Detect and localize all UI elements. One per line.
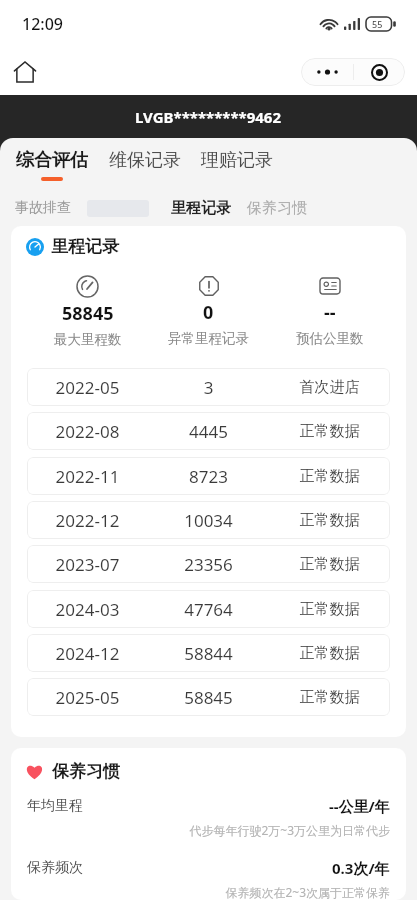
staticText: 年均里程 <box>27 797 83 815</box>
staticText: 维保记录 <box>109 149 181 172</box>
staticText: 2022-05 <box>27 376 148 399</box>
button[interactable]: 2022-05 <box>27 368 390 406</box>
button[interactable]: 2022-08 <box>27 412 390 450</box>
staticText: 58845 <box>148 686 269 709</box>
staticText: 2022-11 <box>27 465 148 488</box>
staticText: -- <box>324 300 336 325</box>
staticText: 异常里程记录 <box>168 330 249 347</box>
button[interactable]: Home <box>8 55 42 89</box>
button[interactable]: 2024-03 <box>27 590 390 628</box>
staticText: 保养习惯 <box>52 761 120 782</box>
staticText: 2022-12 <box>27 509 148 532</box>
button[interactable]: Close <box>354 58 405 86</box>
staticText: 保养频次 <box>27 859 83 877</box>
button[interactable]: 事故排查 <box>15 199 71 217</box>
staticText: 代步每年行驶2万~3万公里为日常代步 <box>27 822 390 838</box>
staticText: 正常数据 <box>269 644 390 663</box>
staticText: 事故排查 <box>15 199 71 217</box>
button[interactable]: 2024-12 <box>27 634 390 672</box>
button[interactable]: 维保记录 <box>109 138 181 181</box>
staticText: 预估公里数 <box>296 330 364 347</box>
staticText: 58845 <box>62 301 114 326</box>
staticText: 4445 <box>148 420 269 443</box>
staticText: 2024-03 <box>27 598 148 621</box>
button[interactable]: 2023-07 <box>27 545 390 583</box>
staticText: 正常数据 <box>269 422 390 441</box>
staticText: 正常数据 <box>269 555 390 574</box>
staticText: 2024-12 <box>27 642 148 665</box>
button[interactable]: 里程记录 <box>171 199 231 218</box>
staticText: 首次进店 <box>269 378 390 397</box>
staticText: 正常数据 <box>269 688 390 707</box>
staticText: 23356 <box>148 553 269 576</box>
staticText: 8723 <box>148 465 269 488</box>
staticText: 2025-05 <box>27 686 148 709</box>
button[interactable]: 综合评估 <box>16 138 88 181</box>
staticText: 最大里程数 <box>54 331 122 348</box>
staticText: 3 <box>148 376 269 399</box>
staticText: 58844 <box>148 642 269 665</box>
staticText: 理赔记录 <box>201 149 273 172</box>
staticText: 0.3次/年 <box>332 858 390 878</box>
staticText: 47764 <box>148 598 269 621</box>
staticText: 正常数据 <box>269 511 390 530</box>
staticText: 保养频次在2~3次属于正常保养 <box>27 884 390 900</box>
staticText: 55 <box>372 18 383 30</box>
staticText: 正常数据 <box>269 467 390 486</box>
staticText: 正常数据 <box>269 600 390 619</box>
staticText: 综合评估 <box>16 149 88 172</box>
staticText: LVGB*********9462 <box>135 107 282 127</box>
staticText: 2022-08 <box>27 420 148 443</box>
staticText: 里程记录 <box>171 199 231 218</box>
button[interactable]: 理赔记录 <box>201 138 273 181</box>
button[interactable]: 2022-11 <box>27 457 390 495</box>
staticText: 里程记录 <box>51 236 119 257</box>
staticText: 保养习惯 <box>247 199 307 218</box>
button[interactable]: 保养习惯 <box>247 199 307 218</box>
button[interactable]: 2022-12 <box>27 501 390 539</box>
staticText: --公里/年 <box>329 796 390 816</box>
button[interactable]: More <box>301 58 353 86</box>
staticText: 10034 <box>148 509 269 532</box>
staticText: 2023-07 <box>27 553 148 576</box>
staticText: 12:09 <box>22 13 63 35</box>
staticText: 0 <box>203 300 214 325</box>
button[interactable]: 2025-05 <box>27 678 390 716</box>
